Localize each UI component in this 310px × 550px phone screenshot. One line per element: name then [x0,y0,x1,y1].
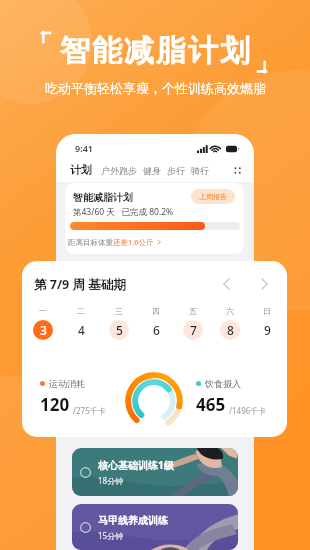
button[interactable]: 日 [248,306,285,340]
button[interactable]: Next week [255,275,273,293]
staticText: 第 7/9 周 基础期 [34,276,126,293]
button[interactable]: 三 [100,306,137,340]
staticText: 吃动平衡轻松享瘦，个性训练高效燃脂 [45,80,266,96]
staticText: 上周报告 [199,192,227,201]
staticText: 距离目标体重 [68,238,113,247]
staticText: 一 [39,306,47,316]
button[interactable]: 二 [62,306,100,340]
button[interactable]: 计划 [70,163,92,177]
staticText: 二 [77,306,85,316]
staticText: 120 [40,393,70,416]
staticText: 三 [115,306,123,316]
button[interactable]: 五 [174,306,211,340]
button[interactable]: More [231,164,243,176]
staticText: 3 [40,322,47,338]
button[interactable]: 马甲线养成训练 [72,504,238,550]
staticText: 6 [153,322,160,338]
button[interactable]: 四 [137,306,174,340]
staticText: 8 [227,322,234,338]
staticText: 9 [264,322,271,338]
staticText: 4 [78,322,85,338]
staticText: 计划 [70,163,92,177]
staticText: /1496千卡 [229,405,267,416]
staticText: 步行 [167,165,185,176]
button[interactable]: 步行 [164,165,188,176]
staticText: 户外跑步 [101,165,137,176]
staticText: 智能减脂计划 [73,191,133,204]
staticText: 7 [190,322,197,338]
staticText: 饮食摄入 [205,378,241,389]
staticText: /275千卡 [73,405,106,416]
button[interactable]: 核心基础训练1级 [72,448,238,496]
button[interactable]: 健身 [140,165,164,176]
staticText: 日 [263,306,271,316]
staticText: 465 [196,393,226,416]
button[interactable]: 智能减脂计划 [65,183,244,254]
staticText: 9:41 [75,142,93,154]
staticText: 15分钟 [98,530,124,541]
staticText: 18分钟 [98,475,124,486]
staticText: 健身 [143,165,161,176]
button[interactable]: 上周报告 [191,189,235,204]
button[interactable]: 户外跑步 [98,165,140,176]
staticText: 第43/60 天 已完成 80.2% [73,206,174,218]
staticText: 马甲线养成训练 [98,514,168,527]
button[interactable]: Previous week [217,275,235,293]
staticText: 五 [189,306,197,316]
staticText: 智能减脂计划 [59,32,251,70]
staticText: 骑行 [191,165,209,176]
staticText: 运动消耗 [49,378,85,389]
staticText: 六 [226,306,234,316]
staticText: 四 [152,306,160,316]
button[interactable]: 一 [24,306,62,340]
staticText: 还差1.6公斤 [113,237,154,247]
button[interactable]: 六 [211,306,248,340]
staticText: 5 [116,322,123,338]
button[interactable]: 骑行 [188,165,212,176]
staticText: 核心基础训练1级 [98,458,174,472]
